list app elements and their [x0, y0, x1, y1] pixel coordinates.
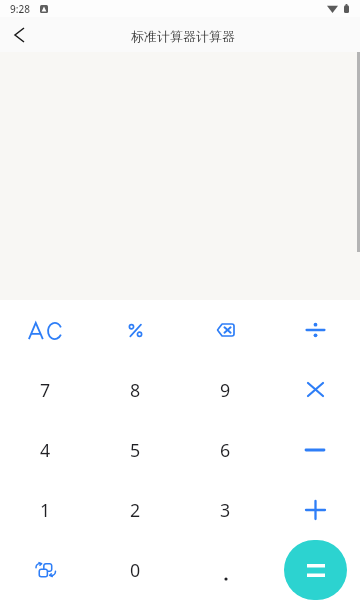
- button[interactable]: 2: [90, 480, 180, 540]
- button[interactable]: Backspace: [180, 300, 270, 360]
- other: Backspace: [217, 324, 234, 336]
- button[interactable]: 1: [0, 480, 90, 540]
- button[interactable]: 9: [180, 360, 270, 420]
- button[interactable]: 0: [90, 540, 180, 600]
- staticText: 3: [220, 498, 231, 522]
- staticText: 9: [220, 378, 231, 402]
- other: All clear: [28, 322, 63, 340]
- staticText: 1: [40, 498, 51, 522]
- staticText: 9:28: [10, 2, 30, 16]
- staticText: 7: [40, 378, 51, 402]
- button[interactable]: Multiply: [270, 360, 360, 420]
- button[interactable]: All clear: [0, 300, 90, 360]
- other: Multiply: [308, 383, 323, 396]
- button[interactable]: Plus: [270, 480, 360, 540]
- other: Divide: [306, 323, 325, 337]
- button[interactable]: 3: [180, 480, 270, 540]
- button[interactable]: 8: [90, 360, 180, 420]
- button[interactable]: Minus: [270, 420, 360, 480]
- staticText: 0: [130, 558, 141, 582]
- staticText: 4: [40, 438, 51, 462]
- staticText: 2: [130, 498, 141, 522]
- button[interactable]: 4: [0, 420, 90, 480]
- other: Percent: [129, 324, 142, 337]
- staticText: 8: [130, 378, 141, 402]
- button[interactable]: [180, 540, 270, 600]
- button[interactable]: 6: [180, 420, 270, 480]
- button[interactable]: Equals: [270, 540, 360, 600]
- button[interactable]: Equals: [284, 540, 347, 600]
- button[interactable]: Convert units: [0, 540, 90, 600]
- other: Convert units: [36, 563, 55, 579]
- staticText: 标准计算器计算器: [131, 28, 235, 44]
- other: Plus: [306, 501, 325, 519]
- button[interactable]: 7: [0, 360, 90, 420]
- button[interactable]: 5: [90, 420, 180, 480]
- staticText: 5: [130, 438, 141, 462]
- button[interactable]: Divide: [270, 300, 360, 360]
- button[interactable]: Back: [0, 18, 38, 52]
- staticText: 6: [220, 438, 231, 462]
- other: Minus: [306, 448, 324, 452]
- button[interactable]: Percent: [90, 300, 180, 360]
